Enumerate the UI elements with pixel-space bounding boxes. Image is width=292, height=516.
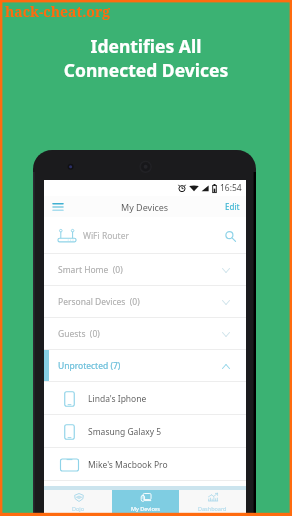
button[interactable]: Smart Home (0)	[44, 254, 246, 286]
staticText: Smasung Galaxy 5	[88, 426, 162, 438]
button[interactable]: WiFi Router	[44, 217, 246, 254]
button[interactable]: Unprotected (7)	[44, 350, 246, 382]
button[interactable]: Smasung Galaxy 5	[44, 415, 246, 448]
staticText: Smart Home (0)	[58, 264, 123, 276]
button[interactable]: Dashboard	[179, 490, 246, 513]
staticText: WiFi Router	[83, 230, 129, 242]
staticText: My Devices	[131, 505, 160, 512]
button[interactable]: My Devices	[112, 490, 179, 513]
staticText: Dashboard	[198, 505, 227, 512]
button[interactable]: Edit	[225, 201, 240, 212]
staticText: Mike's Macbook Pro	[88, 459, 168, 471]
button[interactable]: Menu	[49, 197, 67, 216]
staticText: Identifies All Connected Devices	[0, 34, 292, 82]
staticText: Personal Devices (0)	[58, 296, 140, 308]
staticText: Dojo	[72, 505, 85, 512]
staticText: Guests (0)	[58, 328, 100, 340]
staticText: Unprotected (7)	[58, 360, 121, 372]
button[interactable]: Search	[222, 228, 238, 244]
staticText: Linda's Iphone	[88, 393, 147, 405]
button[interactable]: Linda's Iphone	[44, 382, 246, 415]
staticText: hack-cheat.org	[5, 2, 111, 21]
button[interactable]: Dojo	[44, 490, 112, 513]
staticText: 16:54	[220, 182, 242, 194]
button[interactable]: Mike's Macbook Pro	[44, 448, 246, 481]
staticText: Edit	[225, 201, 240, 212]
button[interactable]: Guests (0)	[44, 318, 246, 350]
button[interactable]: Personal Devices (0)	[44, 286, 246, 318]
staticText: My Devices	[121, 201, 169, 213]
